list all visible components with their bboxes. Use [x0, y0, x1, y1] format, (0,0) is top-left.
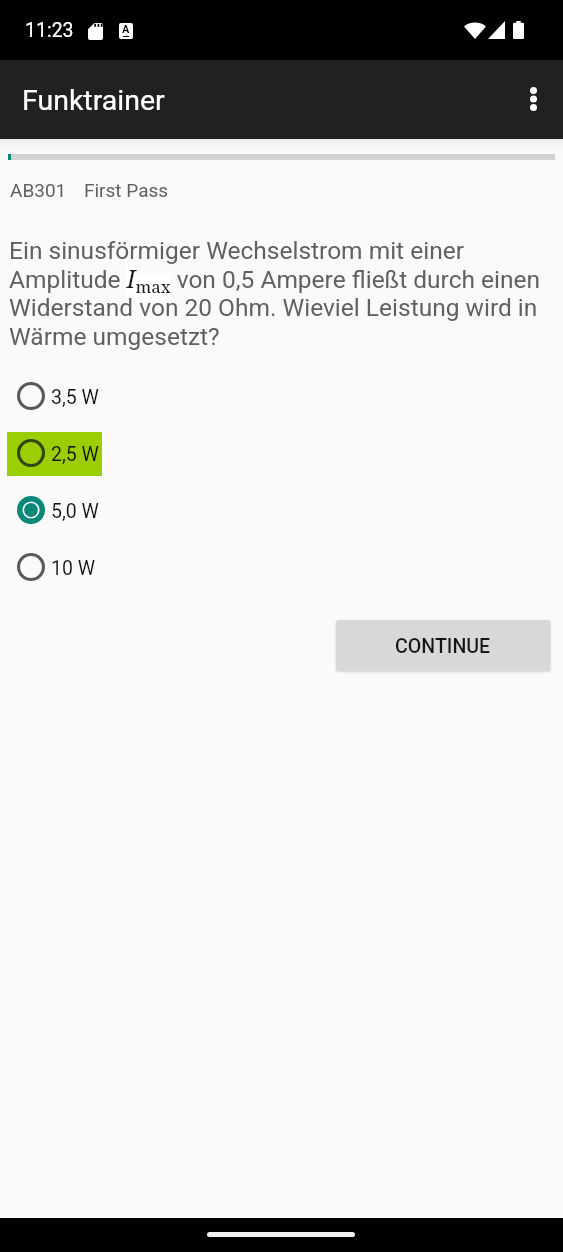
staticText: 2,5 W [51, 445, 99, 465]
staticText: 11:23 [25, 20, 74, 42]
staticText: First Pass [84, 180, 169, 201]
staticText: Funktrainer [22, 85, 165, 117]
button[interactable]: 10 W [0, 539, 563, 596]
button[interactable]: More options [509, 75, 557, 123]
staticText: 5,0 W [51, 502, 99, 522]
staticText: Amplitude Imax von 0,5 Ampere fließt dur… [9, 266, 541, 303]
staticText: A [122, 23, 130, 36]
staticText: CONTINUE [395, 635, 491, 658]
staticText: 10 W [51, 559, 96, 579]
button[interactable]: 3,5 W [0, 368, 563, 425]
staticText: Ein sinusförmiger Wechselstrom mit einer [9, 237, 464, 265]
staticText: Widerstand von 20 Ohm. Wieviel Leistung … [9, 294, 538, 322]
button[interactable]: CONTINUE [336, 620, 550, 671]
staticText: AB301 [10, 180, 67, 201]
button[interactable]: 5,0 W [0, 482, 563, 539]
staticText: Wärme umgesetzt? [9, 323, 220, 351]
staticText: 3,5 W [51, 388, 99, 408]
button[interactable]: 2,5 W [0, 425, 563, 482]
